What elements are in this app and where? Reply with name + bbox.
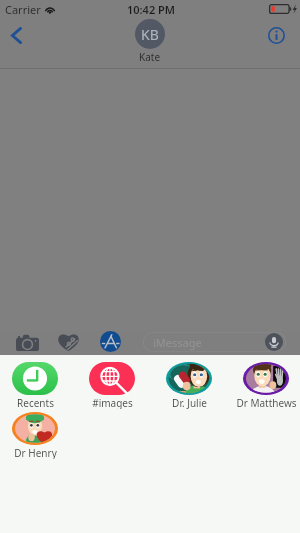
button[interactable]: Dr. Julie [166, 362, 212, 409]
staticText: Carrier [5, 2, 41, 17]
staticText: KB [141, 25, 159, 44]
staticText: Recents [17, 396, 54, 409]
staticText: 10:42 PM [127, 2, 176, 17]
button[interactable]: Dr Matthews [243, 362, 289, 409]
staticText: Kate [139, 50, 161, 64]
button[interactable]: App Store [100, 331, 121, 352]
button[interactable]: Back [0, 19, 32, 51]
button[interactable]: Digital Touch [58, 331, 79, 352]
button[interactable]: #images [89, 362, 135, 409]
button[interactable]: Recents [12, 362, 58, 409]
staticText: Dr. Julie [172, 396, 207, 409]
staticText: iMessage [153, 335, 202, 350]
button[interactable]: Camera [16, 332, 39, 352]
staticText: Dr Matthews [236, 396, 297, 409]
button[interactable]: Dr Henry [12, 412, 58, 459]
button[interactable]: iMessage [143, 332, 286, 352]
button[interactable]: Dictate [265, 333, 283, 351]
button[interactable]: KB [135, 19, 165, 64]
button[interactable]: Details [262, 21, 290, 49]
staticText: #images [92, 396, 133, 409]
staticText: Dr Henry [14, 446, 57, 459]
